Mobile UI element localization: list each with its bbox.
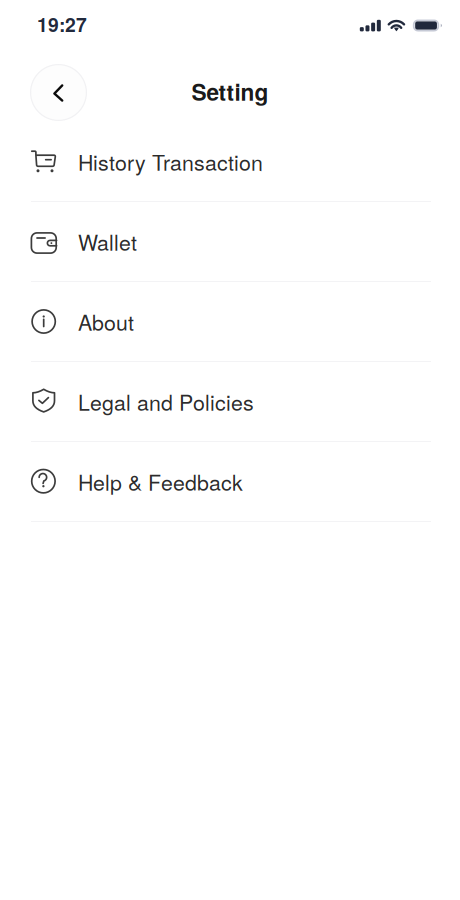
button[interactable]: Wallet [0,202,460,282]
staticText: About [78,306,134,337]
button[interactable]: Help & Feedback [0,442,460,522]
button[interactable]: History Transaction [0,122,460,202]
staticText: 19:27 [37,10,87,38]
staticText: Help & Feedback [78,466,243,497]
staticText: History Transaction [78,146,263,177]
button[interactable]: Legal and Policies [0,362,460,442]
button[interactable]: Back [30,64,87,121]
staticText: Setting [191,75,268,108]
staticText: Legal and Policies [78,386,254,417]
button[interactable]: About [0,282,460,362]
staticText: Wallet [78,226,137,257]
